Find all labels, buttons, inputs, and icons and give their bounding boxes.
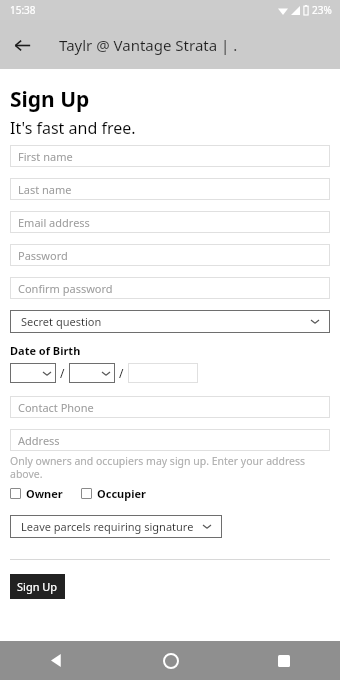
staticText: Only owners and occupiers may sign up. E… bbox=[10, 454, 330, 481]
staticText: Confirm password bbox=[18, 281, 113, 296]
staticText: Last name bbox=[18, 182, 72, 197]
staticText: Owner bbox=[26, 486, 63, 501]
button[interactable]: Last name bbox=[10, 178, 330, 200]
staticText: / bbox=[119, 365, 124, 381]
staticText: Sign Up bbox=[17, 579, 58, 594]
staticText: Taylr @ Vantage Strata | . bbox=[59, 35, 238, 55]
staticText: Secret question bbox=[21, 314, 311, 329]
button[interactable]: Back bbox=[6, 29, 38, 61]
staticText: Sign Up bbox=[10, 85, 90, 114]
button[interactable]: First name bbox=[10, 145, 330, 167]
staticText: It's fast and free. bbox=[10, 117, 136, 139]
button[interactable]: Address bbox=[10, 429, 330, 451]
staticText: Occupier bbox=[97, 486, 146, 501]
button[interactable]: Select date part bbox=[10, 363, 56, 383]
button[interactable]: Leave parcels requiring signature bbox=[10, 515, 222, 538]
staticText: 23% bbox=[312, 3, 332, 17]
button[interactable] bbox=[128, 363, 198, 383]
staticText: First name bbox=[18, 149, 73, 164]
button[interactable]: Secret question bbox=[10, 310, 330, 333]
staticText: Leave parcels requiring signature bbox=[21, 519, 203, 534]
button[interactable]: Recent apps bbox=[227, 641, 340, 680]
button[interactable]: Owner bbox=[10, 486, 63, 501]
button[interactable]: Select date part bbox=[69, 363, 115, 383]
button[interactable]: Occupier bbox=[81, 486, 146, 501]
staticText: / bbox=[60, 365, 65, 381]
button[interactable]: Contact Phone bbox=[10, 396, 330, 418]
button[interactable]: Confirm password bbox=[10, 277, 330, 299]
staticText: 15:38 bbox=[10, 3, 36, 17]
staticText: Contact Phone bbox=[18, 400, 94, 415]
staticText: Password bbox=[18, 248, 68, 263]
button[interactable]: Email address bbox=[10, 211, 330, 233]
staticText: Date of Birth bbox=[10, 343, 81, 358]
button[interactable]: Sign Up bbox=[10, 574, 65, 599]
button[interactable]: Password bbox=[10, 244, 330, 266]
staticText: Email address bbox=[18, 215, 90, 230]
staticText: Address bbox=[18, 433, 60, 448]
button[interactable]: Home bbox=[114, 641, 227, 680]
button[interactable]: Back bbox=[0, 641, 114, 680]
